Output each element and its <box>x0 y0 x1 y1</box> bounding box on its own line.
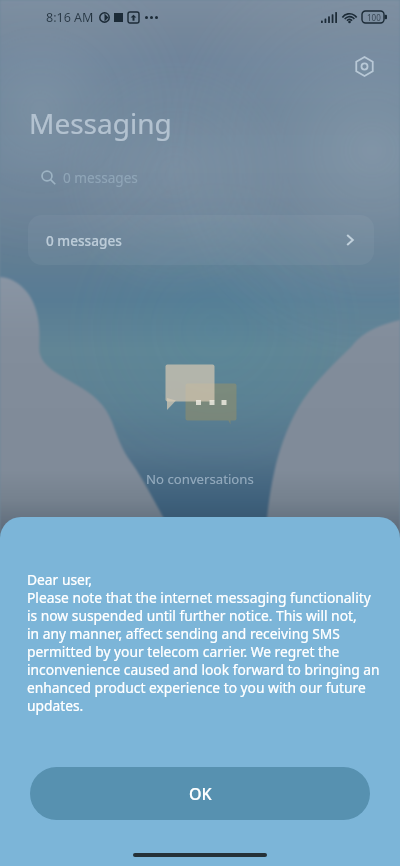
staticText: 0 messages <box>46 231 122 250</box>
staticText: 0 messages <box>63 168 138 187</box>
staticText: 100 <box>367 12 381 23</box>
staticText: 8:16 AM <box>46 9 94 26</box>
button[interactable]: 0 messages <box>28 215 374 265</box>
staticText: No conversations <box>146 470 254 488</box>
staticText: Dear user, Please note that the internet… <box>27 570 380 715</box>
staticText: Messaging <box>29 104 172 142</box>
button[interactable]: Settings <box>348 50 380 82</box>
staticText: OK <box>189 783 212 805</box>
button[interactable]: OK <box>30 767 370 820</box>
